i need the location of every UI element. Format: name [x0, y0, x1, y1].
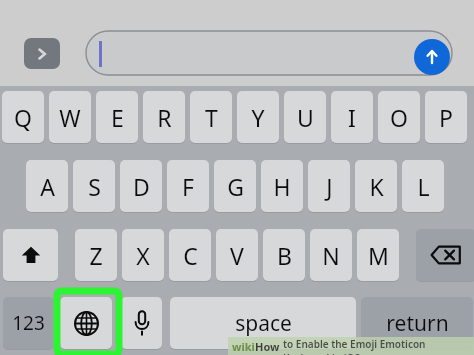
button[interactable]: F	[167, 160, 209, 212]
button[interactable]: I	[331, 91, 373, 143]
staticText: V	[230, 240, 244, 271]
button[interactable]: return	[361, 297, 473, 349]
staticText: H	[273, 171, 291, 202]
button[interactable]: L	[402, 160, 444, 212]
staticText: U	[297, 102, 314, 133]
button[interactable]: J	[308, 160, 350, 212]
button[interactable]: Z	[75, 229, 117, 281]
button[interactable]: P	[425, 91, 467, 143]
staticText: Q	[14, 102, 32, 133]
button[interactable]: 123	[3, 297, 54, 349]
button[interactable]: D	[120, 160, 162, 212]
staticText: T	[205, 102, 218, 133]
button[interactable]: R	[143, 91, 185, 143]
staticText: I	[348, 102, 356, 133]
button[interactable]: Delete	[416, 229, 474, 281]
button[interactable]	[86, 31, 452, 75]
button[interactable]: T	[190, 91, 232, 143]
button[interactable]: U	[284, 91, 326, 143]
staticText: B	[277, 240, 292, 271]
staticText: A	[40, 171, 55, 202]
button[interactable]: B	[263, 229, 305, 281]
button[interactable]: W	[49, 91, 91, 143]
staticText: Z	[89, 240, 103, 271]
staticText: to Enable the Emoji Emoticon Keyboard in…	[283, 337, 474, 355]
staticText: space	[235, 309, 292, 338]
button[interactable]: G	[214, 160, 256, 212]
staticText: M	[368, 240, 389, 271]
button[interactable]: C	[169, 229, 211, 281]
button[interactable]: Q	[2, 91, 44, 143]
staticText: return	[386, 309, 449, 338]
staticText: J	[326, 171, 333, 202]
staticText: How	[255, 339, 280, 354]
staticText: X	[136, 240, 150, 271]
staticText: F	[182, 171, 194, 202]
staticText: Y	[251, 102, 265, 133]
staticText: K	[369, 171, 384, 202]
staticText: P	[439, 102, 453, 133]
button[interactable]: E	[96, 91, 138, 143]
button[interactable]: Switch keyboard / Emoji	[60, 297, 112, 349]
button[interactable]: H	[261, 160, 303, 212]
button[interactable]: K	[355, 160, 397, 212]
button[interactable]: A	[26, 160, 68, 212]
staticText: R	[157, 102, 172, 133]
button[interactable]: Expand	[24, 38, 60, 69]
button[interactable]: O	[378, 91, 420, 143]
staticText: N	[322, 240, 340, 271]
button[interactable]: M	[357, 229, 399, 281]
staticText: O	[390, 102, 408, 133]
button[interactable]: X	[122, 229, 164, 281]
staticText: W	[59, 102, 81, 133]
staticText: S	[88, 171, 101, 202]
staticText: L	[417, 171, 430, 202]
staticText: 123	[12, 310, 45, 336]
button[interactable]: Dictate	[121, 297, 162, 349]
button[interactable]: S	[73, 160, 115, 212]
staticText: G	[227, 171, 244, 202]
staticText: E	[111, 102, 124, 133]
staticText: D	[133, 171, 150, 202]
staticText: C	[183, 240, 198, 271]
button[interactable]: space	[170, 297, 356, 349]
button[interactable]: N	[310, 229, 352, 281]
button[interactable]: Shift	[3, 229, 58, 281]
staticText: wiki	[232, 339, 255, 354]
button[interactable]: Send	[414, 39, 450, 75]
button[interactable]: Y	[237, 91, 279, 143]
button[interactable]: V	[216, 229, 258, 281]
